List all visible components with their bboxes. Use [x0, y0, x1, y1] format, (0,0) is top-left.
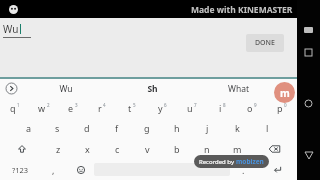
button[interactable]: y	[147, 98, 177, 118]
button[interactable]: Space	[94, 163, 230, 176]
button[interactable]: Sh	[109, 79, 195, 98]
button[interactable]: a	[14, 118, 43, 138]
staticText: 5	[133, 102, 136, 108]
button[interactable]: n	[192, 138, 222, 159]
staticText: l	[266, 122, 269, 134]
button[interactable]: f	[102, 118, 132, 138]
button[interactable]: Hide keyboard	[297, 18, 320, 41]
staticText: Recorded by	[199, 158, 234, 166]
staticText: r	[98, 102, 102, 114]
button[interactable]: .	[230, 159, 257, 180]
staticText: m	[233, 143, 242, 155]
staticText: s	[55, 122, 60, 134]
button[interactable]: Wu	[3, 22, 63, 38]
button[interactable]: p	[267, 98, 297, 118]
button[interactable]: l	[252, 118, 282, 138]
button[interactable]: w	[29, 98, 58, 118]
button[interactable]: What	[195, 79, 281, 98]
button[interactable]: Shift	[0, 138, 44, 159]
staticText: 6	[164, 102, 167, 108]
button[interactable]: Recent apps	[297, 41, 320, 64]
staticText: o	[247, 102, 253, 114]
button[interactable]: d	[72, 118, 102, 138]
staticText: v	[145, 143, 150, 155]
button[interactable]: q	[0, 98, 29, 118]
button[interactable]: Enter	[257, 159, 297, 180]
staticText: ,	[52, 164, 55, 176]
staticText: .	[242, 164, 245, 176]
button[interactable]: j	[192, 118, 222, 138]
staticText: g	[144, 122, 150, 134]
staticText: c	[115, 143, 120, 155]
button[interactable]: t	[117, 98, 147, 118]
button[interactable]: k	[222, 118, 252, 138]
staticText: DONE	[255, 38, 275, 48]
staticText: t	[128, 102, 132, 114]
staticText: 7	[194, 102, 197, 108]
button[interactable]: Backspace	[252, 138, 297, 159]
staticText: 4	[103, 102, 106, 108]
staticText: a	[26, 122, 32, 134]
staticText: mobizen	[236, 157, 264, 166]
staticText: n	[204, 143, 210, 155]
button[interactable]: e	[58, 98, 87, 118]
button[interactable]: o	[237, 98, 267, 118]
button[interactable]: b	[162, 138, 192, 159]
staticText: What	[228, 83, 249, 95]
staticText: j	[206, 122, 209, 134]
button[interactable]: g	[132, 118, 162, 138]
staticText: 3	[75, 102, 78, 108]
staticText: u	[187, 102, 193, 114]
staticText: 9	[254, 102, 257, 108]
staticText: Wu	[3, 22, 19, 36]
staticText: x	[85, 143, 90, 155]
staticText: w	[38, 102, 46, 114]
button[interactable]: x	[73, 138, 102, 159]
staticText: b	[174, 143, 180, 155]
button[interactable]: Back	[297, 144, 320, 167]
staticText: f	[115, 122, 119, 134]
button[interactable]: DONE	[246, 34, 284, 52]
staticText: 0	[284, 102, 287, 108]
button[interactable]: Home	[297, 92, 320, 115]
button[interactable]: ?123	[0, 159, 40, 180]
button[interactable]: Mobizen recorder	[274, 82, 295, 103]
staticText: z	[56, 143, 61, 155]
staticText: m	[280, 86, 290, 100]
staticText: e	[68, 102, 74, 114]
staticText: 1	[17, 102, 20, 108]
staticText: Made with KINEMASTER	[191, 4, 293, 16]
staticText: h	[174, 122, 180, 134]
staticText: 2	[47, 102, 50, 108]
button[interactable]: ,	[40, 159, 67, 180]
staticText: Wu	[59, 83, 73, 95]
button[interactable]: h	[162, 118, 192, 138]
staticText: i	[219, 102, 222, 114]
button[interactable]: u	[177, 98, 207, 118]
staticText: k	[235, 122, 240, 134]
button[interactable]: More suggestions	[0, 79, 22, 98]
button[interactable]: i	[207, 98, 237, 118]
button[interactable]: z	[44, 138, 73, 159]
staticText: y	[158, 102, 163, 114]
staticText: 8	[223, 102, 226, 108]
button[interactable]: r	[87, 98, 117, 118]
button[interactable]: s	[43, 118, 72, 138]
button[interactable]: m	[222, 138, 252, 159]
staticText: ?123	[12, 165, 29, 175]
staticText: p	[277, 102, 283, 114]
button[interactable]: v	[132, 138, 162, 159]
button[interactable]: c	[102, 138, 132, 159]
staticText: q	[10, 102, 16, 114]
staticText: d	[84, 122, 90, 134]
button[interactable]: Emoji	[67, 159, 94, 180]
staticText: Sh	[147, 83, 158, 95]
button[interactable]: Wu	[22, 79, 109, 98]
